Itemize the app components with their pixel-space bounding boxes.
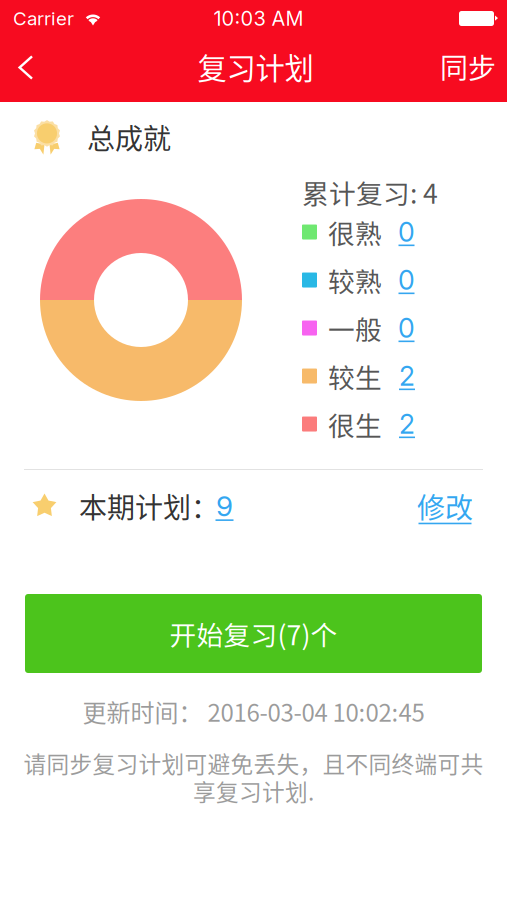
staticText: 10:03 AM <box>213 6 303 31</box>
staticText: 开始复习(7)个 <box>169 614 337 653</box>
staticText: 本期计划： <box>79 486 219 526</box>
staticText: 2 <box>399 360 415 392</box>
staticText: 总成就 <box>87 117 171 157</box>
button[interactable]: 同步 <box>429 37 507 102</box>
staticText: 较熟 <box>328 261 382 299</box>
staticText: Carrier <box>13 7 74 30</box>
staticText: 2 <box>399 408 415 440</box>
staticText: 很生 <box>328 405 382 443</box>
staticText: 请同步复习计划可避免丢失，且不同终端可共 <box>23 746 483 779</box>
staticText: 较生 <box>328 357 382 395</box>
staticText: 9 <box>216 489 233 523</box>
staticText: 一般 <box>328 309 382 347</box>
staticText: 享复习计划. <box>193 774 314 807</box>
staticText: 0 <box>398 264 415 296</box>
button[interactable]: Back <box>0 37 52 102</box>
staticText: 很熟 <box>328 213 382 251</box>
staticText: 复习计划 <box>197 45 313 88</box>
staticText: 更新时间： 2016-03-04 10:02:45 <box>82 694 424 729</box>
button[interactable]: 本期计划： <box>0 470 507 542</box>
staticText: 修改 <box>417 486 473 526</box>
staticText: 同步 <box>440 46 496 87</box>
staticText: 0 <box>398 216 415 248</box>
staticText: 累计复习: 4 <box>302 173 438 211</box>
staticText: 0 <box>398 312 415 344</box>
button[interactable]: 开始复习(7)个 <box>25 594 482 673</box>
